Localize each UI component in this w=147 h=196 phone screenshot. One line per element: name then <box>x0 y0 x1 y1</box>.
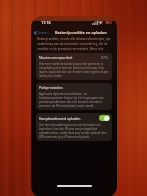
staticText: 87% <box>101 55 109 60</box>
staticText: Maximumcapaciteit <box>39 55 73 60</box>
button[interactable]: Maximumcapaciteit <box>36 53 112 80</box>
staticText: Geoptimaliseerd opladen <box>39 116 81 121</box>
staticText: Batterijconditie en opladen <box>55 30 107 35</box>
staticText: Hiermee wordt de batterijcapaciteit geme… <box>39 62 109 78</box>
staticText: Batterijconditie, net als alle advanced … <box>37 37 113 50</box>
staticText: Piekprestaties <box>39 85 63 90</box>
button[interactable]: Geoptimaliseerd opladen aan <box>99 115 110 121</box>
staticText: Applicatie dynamische software- en hardw… <box>39 92 109 108</box>
staticText: Instel... <box>38 30 51 35</box>
staticText: Om het verouderingsproces van de batteri… <box>39 123 110 139</box>
button[interactable]: Instel... <box>31 30 52 35</box>
button[interactable]: Geoptimaliseerd opladen <box>36 113 112 141</box>
staticText: 17:16 <box>41 20 51 25</box>
button[interactable]: Piekprestaties <box>36 83 112 110</box>
